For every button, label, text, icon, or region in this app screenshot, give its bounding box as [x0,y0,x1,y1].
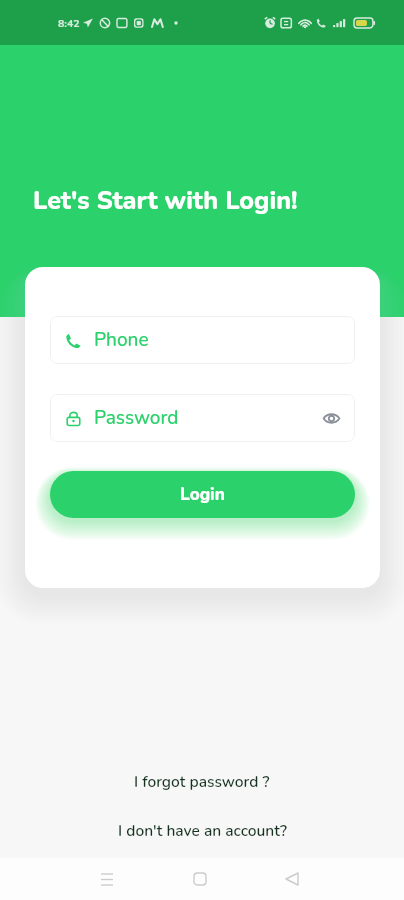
button[interactable]: Back [268,858,316,900]
button[interactable]: I don't have an account? [108,817,297,844]
staticText: 8:42 [58,16,80,30]
button[interactable]: Recent apps [83,858,131,900]
button[interactable]: Phone [50,316,355,364]
button[interactable]: Home [176,858,224,900]
staticText: Let's Start with Login! [33,184,298,218]
button[interactable]: Login [50,471,355,518]
staticText: Phone [94,327,149,353]
button[interactable]: Password [50,394,355,442]
staticText: I forgot password ? [134,771,270,792]
staticText: Login [180,483,225,506]
staticText: Password [94,405,179,431]
staticText: I don't have an account? [118,820,287,841]
button[interactable]: Show password [319,406,343,430]
button[interactable]: I forgot password ? [124,768,280,795]
